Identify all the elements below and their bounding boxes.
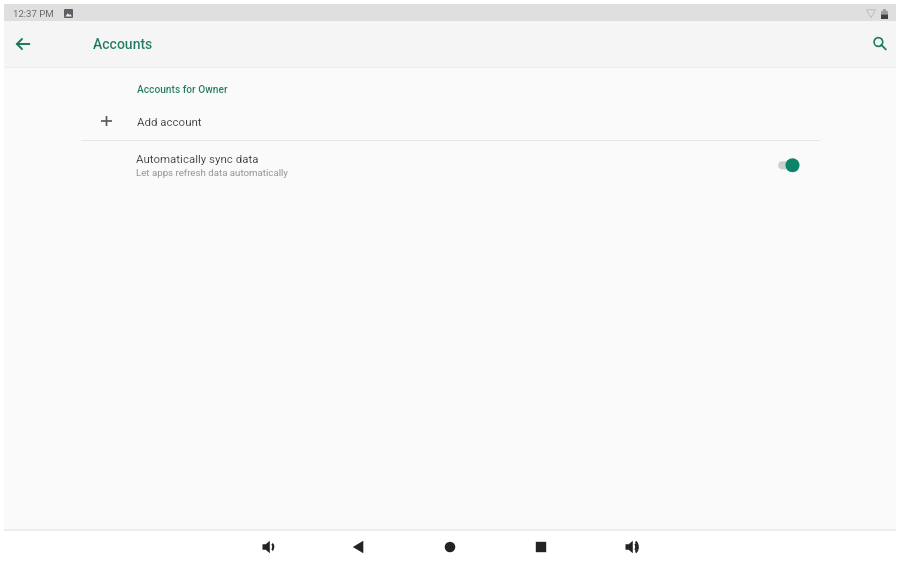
staticText: 12:37 PM — [13, 8, 54, 19]
button[interactable]: Home — [427, 532, 473, 561]
button[interactable]: Volume down — [245, 532, 291, 561]
staticText: Accounts for Owner — [137, 84, 228, 96]
button[interactable]: Back — [335, 532, 381, 561]
button[interactable]: Recent apps — [518, 532, 564, 561]
staticText: Add account — [137, 115, 202, 128]
staticText: Accounts — [93, 36, 153, 52]
button[interactable]: Search — [864, 28, 896, 60]
button[interactable]: Volume up — [608, 532, 654, 561]
button[interactable]: Automatically sync data — [772, 153, 800, 177]
button[interactable]: Add account — [4, 107, 896, 135]
staticText: Let apps refresh data automatically — [136, 167, 288, 178]
button[interactable]: Navigate up — [7, 28, 39, 60]
button[interactable]: Automatically sync data — [4, 143, 896, 187]
staticText: Automatically sync data — [136, 152, 259, 165]
